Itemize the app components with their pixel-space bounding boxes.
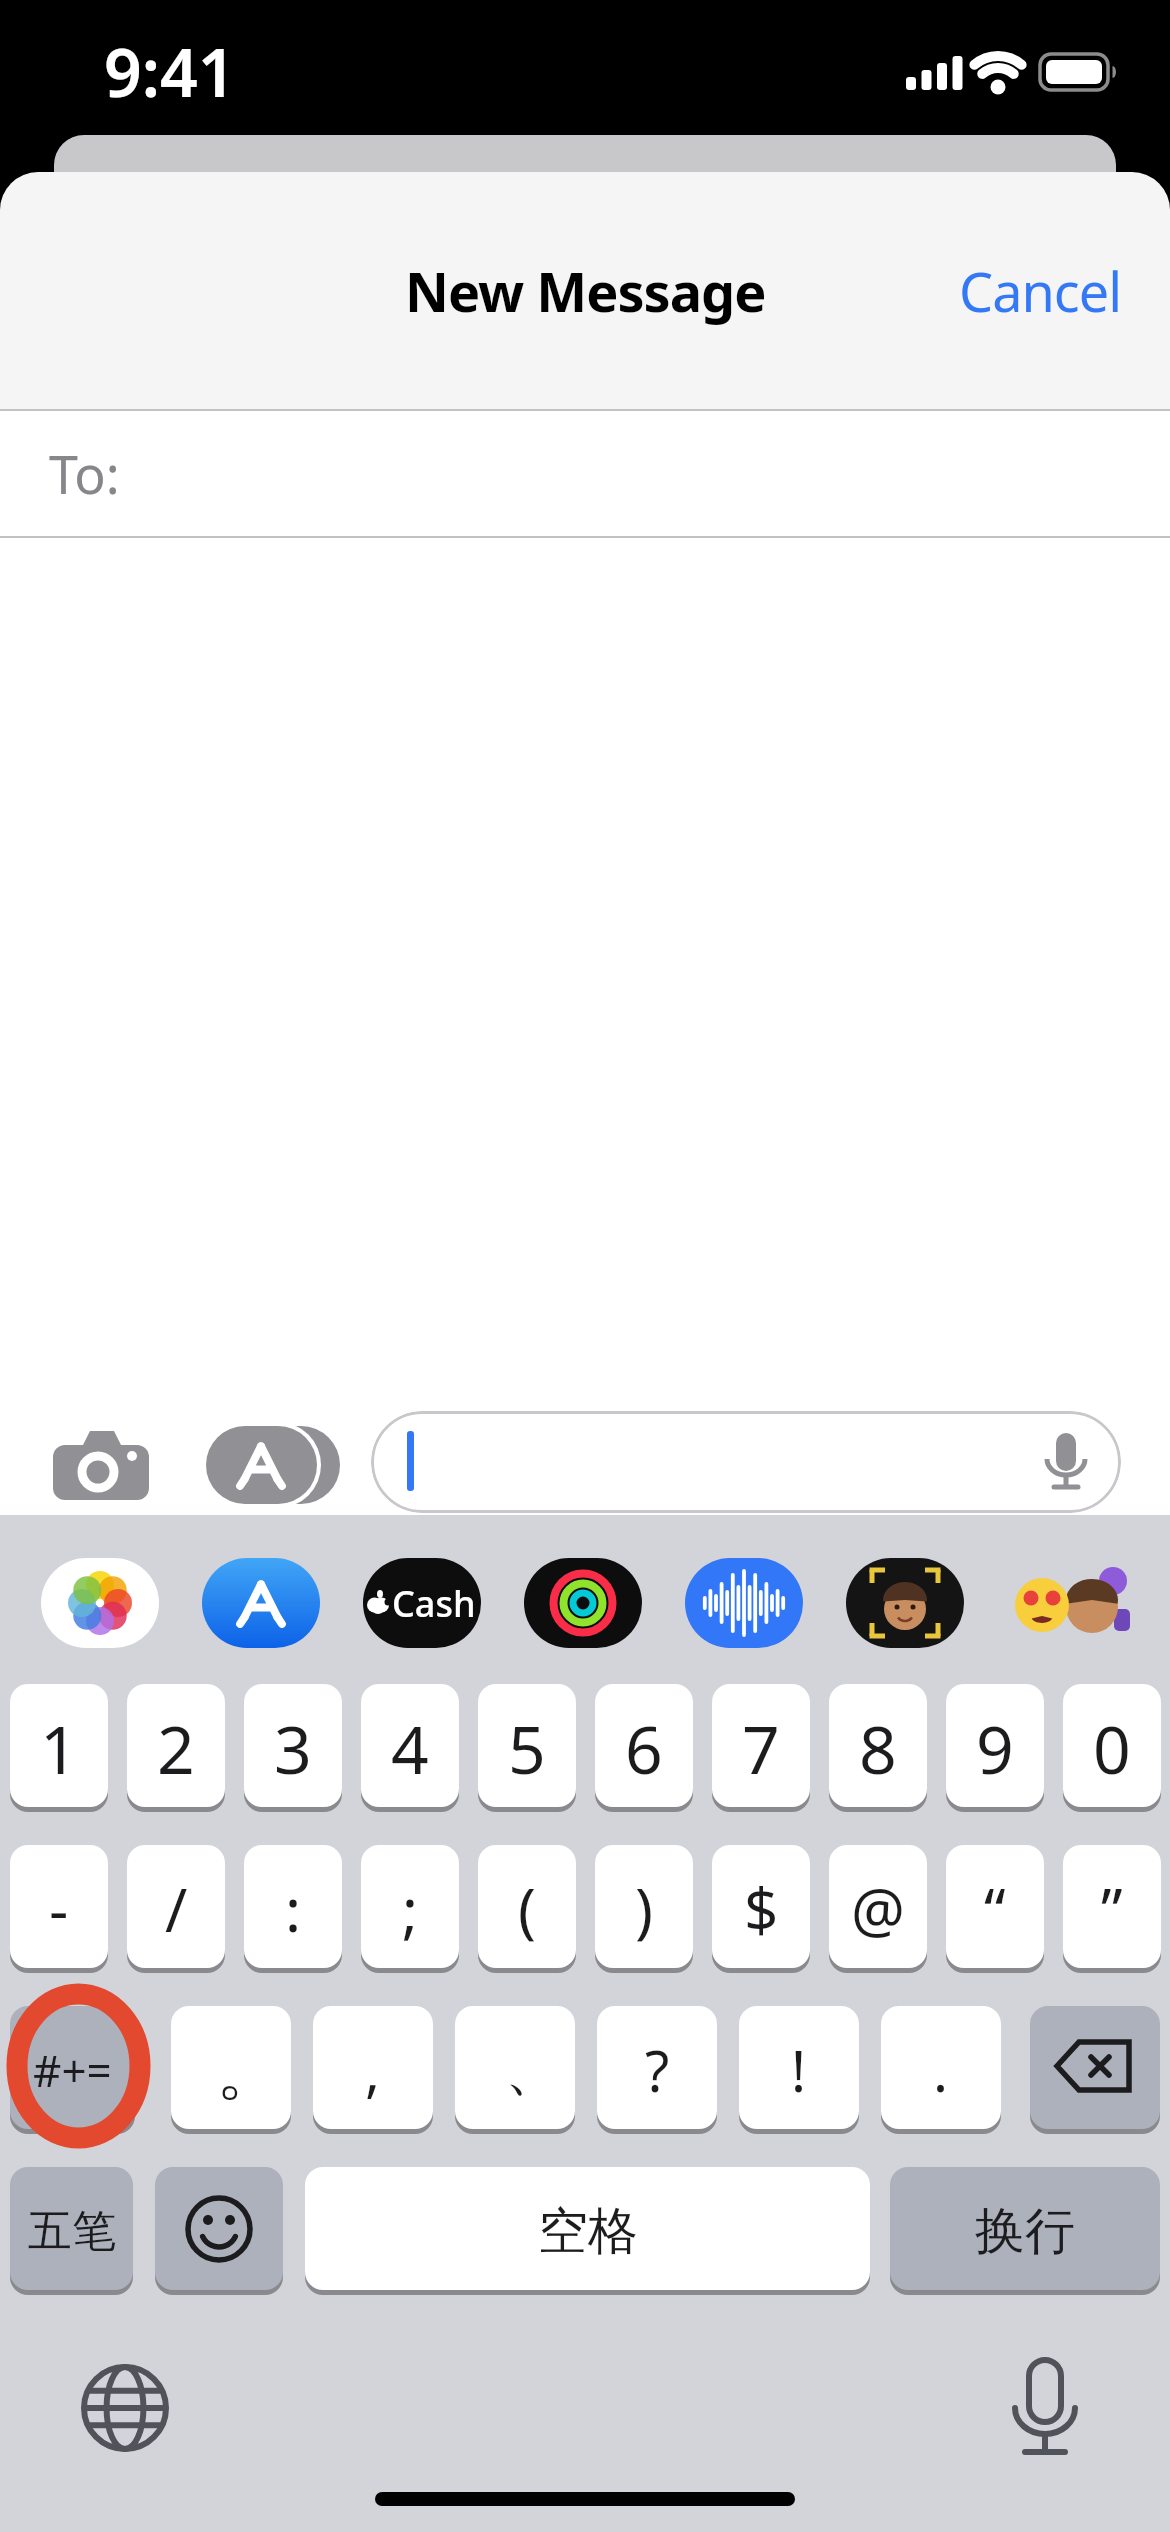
button[interactable] (995, 2352, 1095, 2462)
button[interactable]: 6 (595, 1684, 693, 1812)
button[interactable]: 1 (10, 1684, 108, 1812)
staticText: ( (518, 1868, 536, 1950)
staticText: “ (984, 1868, 1006, 1950)
staticText: 7 (742, 1703, 780, 1793)
staticText: 6 (625, 1703, 663, 1793)
staticText: $ (744, 1868, 779, 1950)
button[interactable]: 换行 (890, 2167, 1160, 2295)
staticText: #+= (33, 2040, 112, 2100)
staticText: 五笔 (28, 2204, 116, 2259)
button[interactable]: 。 (171, 2006, 291, 2134)
button[interactable]: $ (712, 1845, 810, 1973)
staticText: , (365, 2032, 381, 2108)
button[interactable]: : (244, 1845, 342, 1973)
staticText: 2 (157, 1703, 195, 1793)
button[interactable]: #+= (10, 2006, 135, 2134)
button[interactable]: ! (739, 2006, 859, 2134)
staticText: / (165, 1868, 188, 1950)
staticText: Cash (392, 1579, 476, 1628)
button[interactable] (75, 2358, 175, 2458)
button[interactable]: Cancel (959, 254, 1122, 328)
button[interactable]: 8 (829, 1684, 927, 1812)
button[interactable]: ” (1063, 1845, 1161, 1973)
staticText: . (933, 2032, 949, 2108)
staticText: @ (851, 1868, 905, 1950)
staticText: 0 (1093, 1703, 1131, 1793)
staticText: 。 (216, 2029, 282, 2112)
button[interactable]: 4 (361, 1684, 459, 1812)
button[interactable]: ( (478, 1845, 576, 1973)
button[interactable]: / (127, 1845, 225, 1973)
button[interactable]: . (881, 2006, 1001, 2134)
staticText: 、 (505, 2035, 561, 2106)
staticText: ” (1101, 1868, 1123, 1950)
button[interactable]: 五笔 (10, 2167, 133, 2295)
staticText: To: (49, 438, 120, 509)
staticText: - (49, 1868, 69, 1950)
button[interactable]: ) (595, 1845, 693, 1973)
button[interactable]: ? (597, 2006, 717, 2134)
staticText: ? (645, 2032, 670, 2108)
button[interactable]: To: (0, 411, 1170, 536)
staticText: 空格 (538, 2200, 638, 2263)
staticText: 1 (40, 1703, 78, 1793)
button[interactable]: 空格 (305, 2167, 870, 2295)
staticText: 4 (391, 1703, 429, 1793)
button[interactable]: 9 (946, 1684, 1044, 1812)
staticText: : (285, 1868, 302, 1950)
staticText: ! (791, 2032, 807, 2108)
staticText: New Message (405, 254, 766, 328)
button[interactable]: 0 (1063, 1684, 1161, 1812)
button[interactable]: 、 (455, 2006, 575, 2134)
button[interactable] (206, 1426, 340, 1504)
staticText: ) (635, 1868, 653, 1950)
staticText: 5 (508, 1703, 546, 1793)
button[interactable]: ; (361, 1845, 459, 1973)
button[interactable]: - (10, 1845, 108, 1973)
staticText: 3 (274, 1703, 312, 1793)
staticText: ; (402, 1868, 419, 1950)
button[interactable]: 7 (712, 1684, 810, 1812)
staticText: 8 (859, 1703, 897, 1793)
button[interactable] (1030, 2006, 1160, 2134)
button[interactable]: 5 (478, 1684, 576, 1812)
staticText: 9 (976, 1703, 1014, 1793)
staticText: 换行 (975, 2200, 1075, 2263)
button[interactable] (0, 1550, 1170, 1660)
staticText: 9:41 (104, 26, 236, 116)
button[interactable] (155, 2167, 283, 2295)
button[interactable]: 3 (244, 1684, 342, 1812)
button[interactable]: 2 (127, 1684, 225, 1812)
button[interactable] (371, 1411, 1121, 1513)
button[interactable]: , (313, 2006, 433, 2134)
button[interactable]: @ (829, 1845, 927, 1973)
staticText: Cancel (959, 254, 1122, 328)
button[interactable]: “ (946, 1845, 1044, 1973)
button[interactable] (48, 1425, 154, 1505)
